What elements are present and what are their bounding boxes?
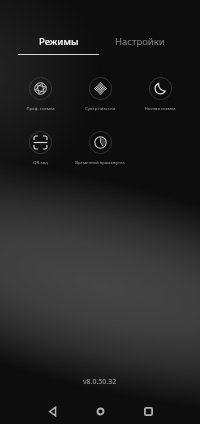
button[interactable]: Временной промежуток: [70, 131, 130, 166]
button[interactable]: Проф. съемка: [10, 77, 70, 112]
staticText: Настройки: [115, 35, 165, 48]
button[interactable]: QR-код: [10, 131, 70, 166]
staticText: Проф. съемка: [26, 106, 55, 112]
staticText: QR-код: [33, 160, 48, 166]
button[interactable]: Back: [28, 388, 76, 424]
button[interactable]: Recent apps: [124, 388, 172, 424]
staticText: v8.0.50.32: [83, 377, 117, 387]
staticText: Супер пиксели: [85, 106, 115, 112]
staticText: Временной промежуток: [75, 160, 125, 166]
button[interactable]: Режимы: [18, 31, 99, 55]
button[interactable]: Настройки: [99, 31, 181, 55]
staticText: Ночная съемка: [144, 106, 176, 112]
button[interactable]: Супер пиксели: [70, 77, 130, 112]
button[interactable]: Home: [76, 388, 124, 424]
staticText: Режимы: [39, 35, 79, 48]
button[interactable]: Ночная съемка: [130, 77, 190, 112]
